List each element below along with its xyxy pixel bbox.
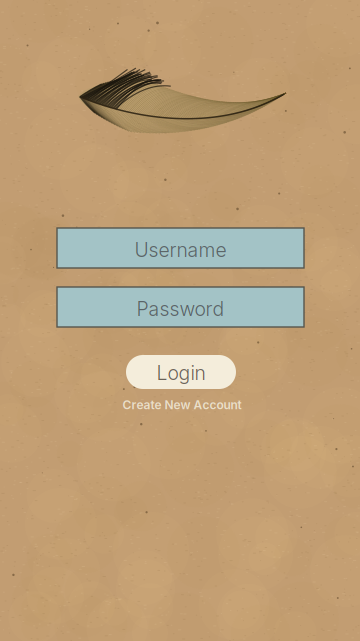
button[interactable]: Create New Account — [82, 397, 282, 413]
staticText: Username — [134, 238, 226, 262]
staticText: Password — [136, 297, 224, 321]
button[interactable]: Password — [57, 287, 304, 327]
staticText: Create New Account — [122, 398, 241, 412]
staticText: Login — [156, 361, 205, 385]
button[interactable]: Username — [57, 228, 304, 268]
button[interactable]: Login — [126, 355, 236, 389]
